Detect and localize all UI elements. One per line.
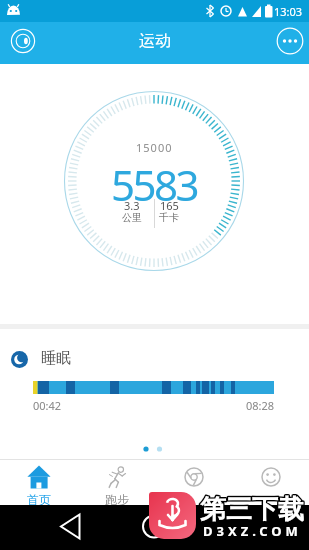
staticText: 13:03	[274, 4, 303, 19]
staticText: 运动	[139, 31, 171, 51]
staticText: 165	[160, 198, 179, 213]
staticText: 15000	[136, 140, 173, 155]
button[interactable]	[9, 27, 37, 55]
button[interactable]	[149, 492, 196, 539]
button[interactable]: 首页	[0, 459, 78, 505]
staticText: 第三下载	[200, 493, 304, 526]
staticText: 5583	[111, 156, 198, 213]
button[interactable]	[232, 459, 309, 505]
staticText: 跑步	[105, 492, 129, 505]
staticText: 首页	[27, 492, 51, 505]
staticText: D3XZ.COM	[203, 522, 302, 540]
staticText: 第三下载	[200, 493, 304, 526]
staticText: 睡眠	[41, 349, 71, 368]
staticText: 08:28	[246, 398, 275, 413]
staticText: 00:42	[33, 398, 62, 413]
staticText: D3XZ.COM	[203, 522, 302, 540]
staticText: 千卡	[159, 211, 179, 224]
button[interactable]: 跑步	[78, 459, 155, 505]
button[interactable]	[155, 459, 232, 505]
button[interactable]	[276, 27, 304, 55]
staticText: 公里	[122, 211, 142, 224]
staticText: 3.3	[124, 198, 140, 213]
